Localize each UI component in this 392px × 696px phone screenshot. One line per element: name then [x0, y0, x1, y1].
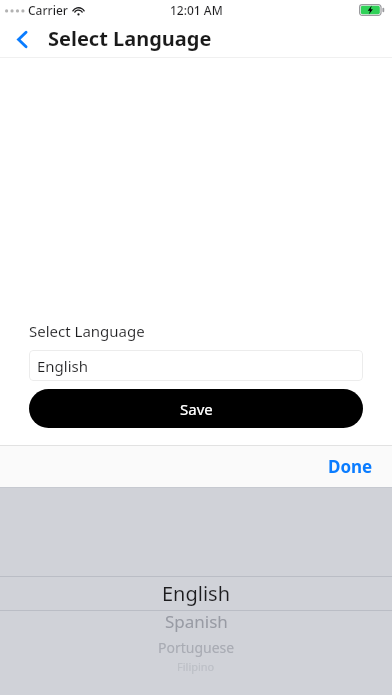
button[interactable]: Portuguese — [0, 634, 392, 660]
staticText: Filipino — [177, 659, 215, 674]
staticText: English — [162, 580, 231, 606]
staticText: English — [37, 356, 89, 376]
button[interactable]: Save — [29, 389, 363, 428]
button[interactable]: English — [29, 350, 363, 381]
staticText: 12:01 AM — [170, 2, 223, 18]
button[interactable]: Back — [4, 21, 40, 57]
staticText: Carrier — [28, 2, 68, 18]
staticText: Spanish — [165, 610, 228, 633]
staticText: Select Language — [48, 25, 212, 52]
staticText: Portuguese — [158, 638, 235, 657]
staticText: Done — [328, 455, 373, 478]
staticText: Select Language — [29, 321, 145, 341]
button[interactable]: Done — [322, 450, 379, 483]
button[interactable]: Spanish — [0, 608, 392, 634]
button[interactable]: English — [0, 580, 392, 606]
staticText: Save — [180, 399, 213, 419]
